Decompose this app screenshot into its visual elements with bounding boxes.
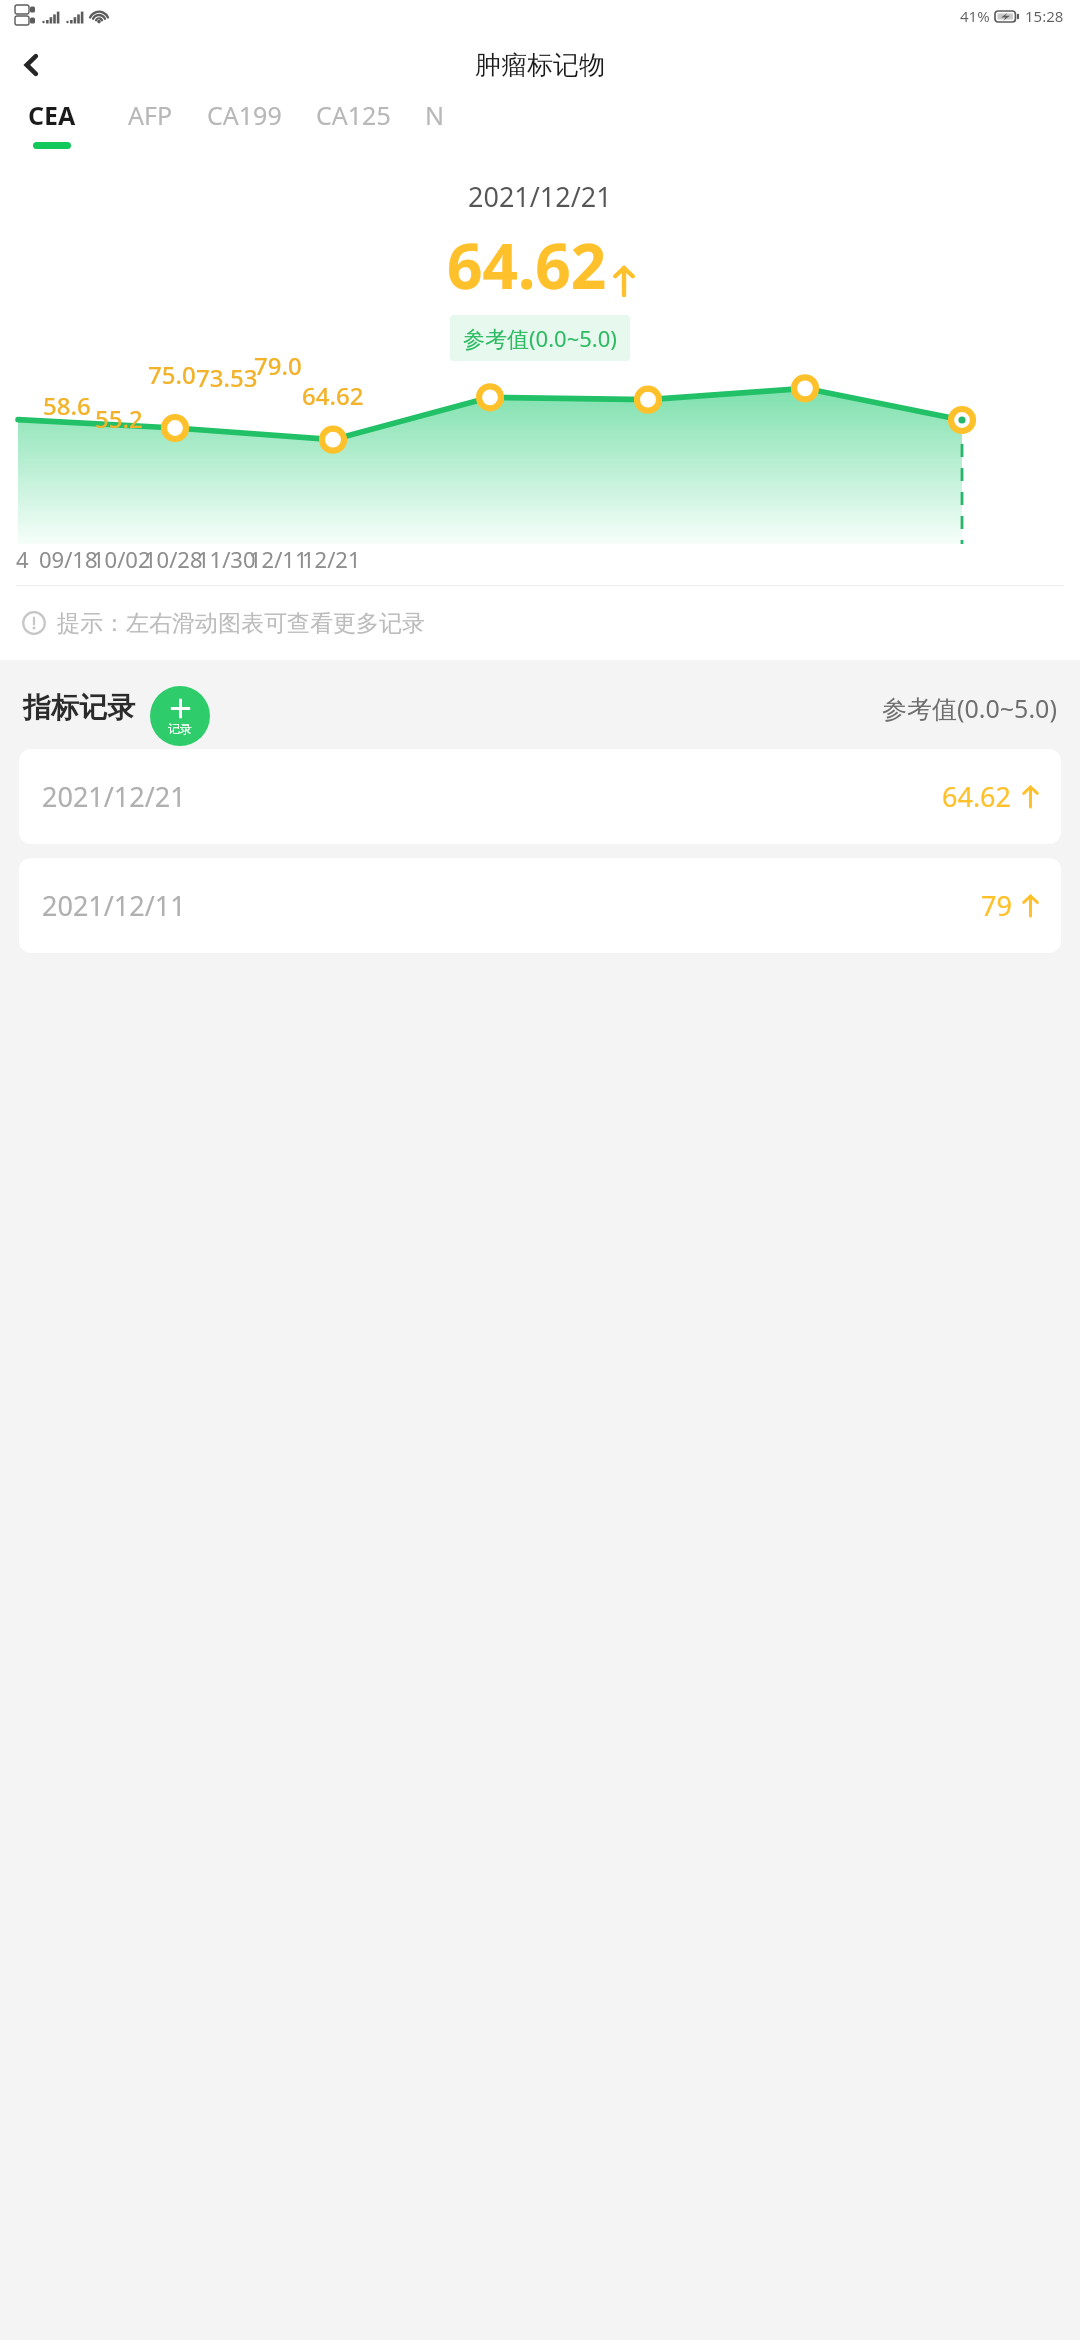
button[interactable]: CA199 <box>207 98 282 142</box>
staticText: 79.0 <box>254 349 302 382</box>
button[interactable]: CA125 <box>316 98 391 142</box>
button[interactable]: 返回 <box>6 39 58 91</box>
staticText: 2021/12/21 <box>468 178 612 215</box>
staticText: AFP <box>128 98 173 132</box>
staticText: 指标记录 <box>23 690 135 725</box>
staticText: 4 <box>16 544 29 574</box>
staticText: 73.53 <box>196 361 258 394</box>
staticText: 11/30 <box>197 544 256 574</box>
staticText: 64.62 <box>447 223 607 307</box>
staticText: 41% <box>960 6 990 26</box>
staticText: CA125 <box>316 98 391 132</box>
button[interactable]: 添加记录 <box>150 686 210 746</box>
staticText: 64.62 <box>302 379 364 412</box>
staticText: CEA <box>28 98 76 132</box>
staticText: 10/02 <box>92 544 151 574</box>
staticText: 提示：左右滑动图表可查看更多记录 <box>57 609 425 638</box>
staticText: 肿瘤标记物 <box>475 49 605 82</box>
staticText: 75.0 <box>148 358 196 391</box>
staticText: 79 <box>981 887 1012 924</box>
staticText: 12/11 <box>249 544 308 574</box>
button[interactable]: 2021/12/21 <box>19 749 1061 844</box>
staticText: 55.2 <box>95 402 143 435</box>
button[interactable]: AFP <box>128 98 173 142</box>
button[interactable]: CEA <box>28 98 76 149</box>
staticText: 58.6 <box>43 389 91 422</box>
staticText: 15:28 <box>1025 6 1064 26</box>
button[interactable]: N <box>425 98 445 142</box>
staticText: 参考值(0.0~5.0) <box>463 323 617 353</box>
staticText: 12/21 <box>302 544 361 574</box>
staticText: 09/18 <box>39 544 98 574</box>
staticText: 10/28 <box>144 544 203 574</box>
staticText: 记录 <box>168 721 192 736</box>
staticText: 参考值(0.0~5.0) <box>882 691 1057 725</box>
button[interactable]: 2021/12/11 <box>19 858 1061 953</box>
staticText: 2021/12/21 <box>42 778 186 815</box>
staticText: 64.62 <box>942 778 1012 815</box>
staticText: N <box>425 98 445 132</box>
staticText: 2021/12/11 <box>42 887 186 924</box>
staticText: CA199 <box>207 98 282 132</box>
